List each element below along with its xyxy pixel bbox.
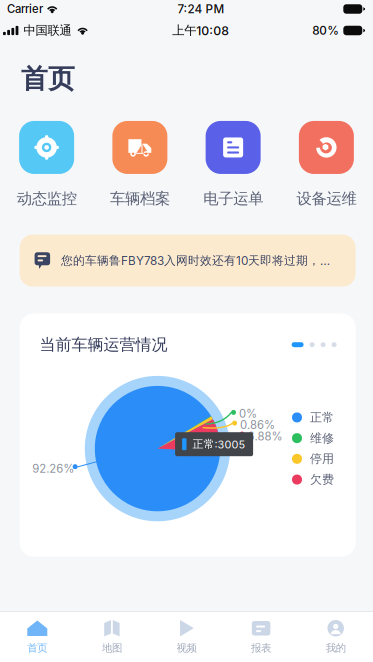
staticText: 首页: [27, 641, 47, 655]
staticText: 7:24 PM: [178, 2, 225, 16]
staticText: 正常: [310, 410, 334, 425]
button[interactable]: 我的: [298, 612, 373, 662]
button[interactable]: 您的车辆鲁FBY783入网时效还有10天即将过期，…: [20, 235, 356, 287]
button[interactable]: 首页: [0, 612, 75, 662]
staticText: 您的车辆鲁FBY783入网时效还有10天即将过期，…: [61, 253, 330, 268]
staticText: 6.88%: [247, 429, 282, 443]
staticText: 92.26%: [32, 462, 74, 475]
staticText: 中国联通: [23, 23, 71, 38]
staticText: 我的: [326, 641, 346, 655]
staticText: 停用: [310, 451, 334, 466]
staticText: 上午10:08: [172, 23, 229, 38]
staticText: 首页: [21, 62, 75, 96]
button[interactable]: 电子运单: [186, 124, 280, 206]
staticText: 设备运维: [296, 189, 356, 208]
staticText: 正常:3005: [192, 437, 245, 451]
button[interactable]: 地图: [75, 612, 149, 662]
staticText: 报表: [251, 641, 271, 655]
button[interactable]: 设备运维: [280, 124, 373, 206]
staticText: 地图: [102, 641, 122, 655]
staticText: 动态监控: [17, 189, 77, 208]
staticText: 维修: [310, 431, 334, 446]
staticText: 当前车辆运营情况: [40, 335, 168, 355]
staticText: 欠费: [310, 472, 334, 487]
button[interactable]: 车辆档案: [93, 124, 186, 206]
staticText: 0%: [239, 407, 257, 420]
button[interactable]: 视频: [149, 612, 224, 662]
staticText: 车辆档案: [110, 189, 170, 208]
staticText: 电子运单: [203, 189, 263, 208]
button[interactable]: 报表: [224, 612, 298, 662]
staticText: 视频: [176, 641, 196, 655]
staticText: 80%: [312, 23, 339, 38]
staticText: 0.86%: [240, 418, 275, 432]
staticText: Carrier: [7, 2, 43, 16]
button[interactable]: 动态监控: [0, 124, 93, 206]
